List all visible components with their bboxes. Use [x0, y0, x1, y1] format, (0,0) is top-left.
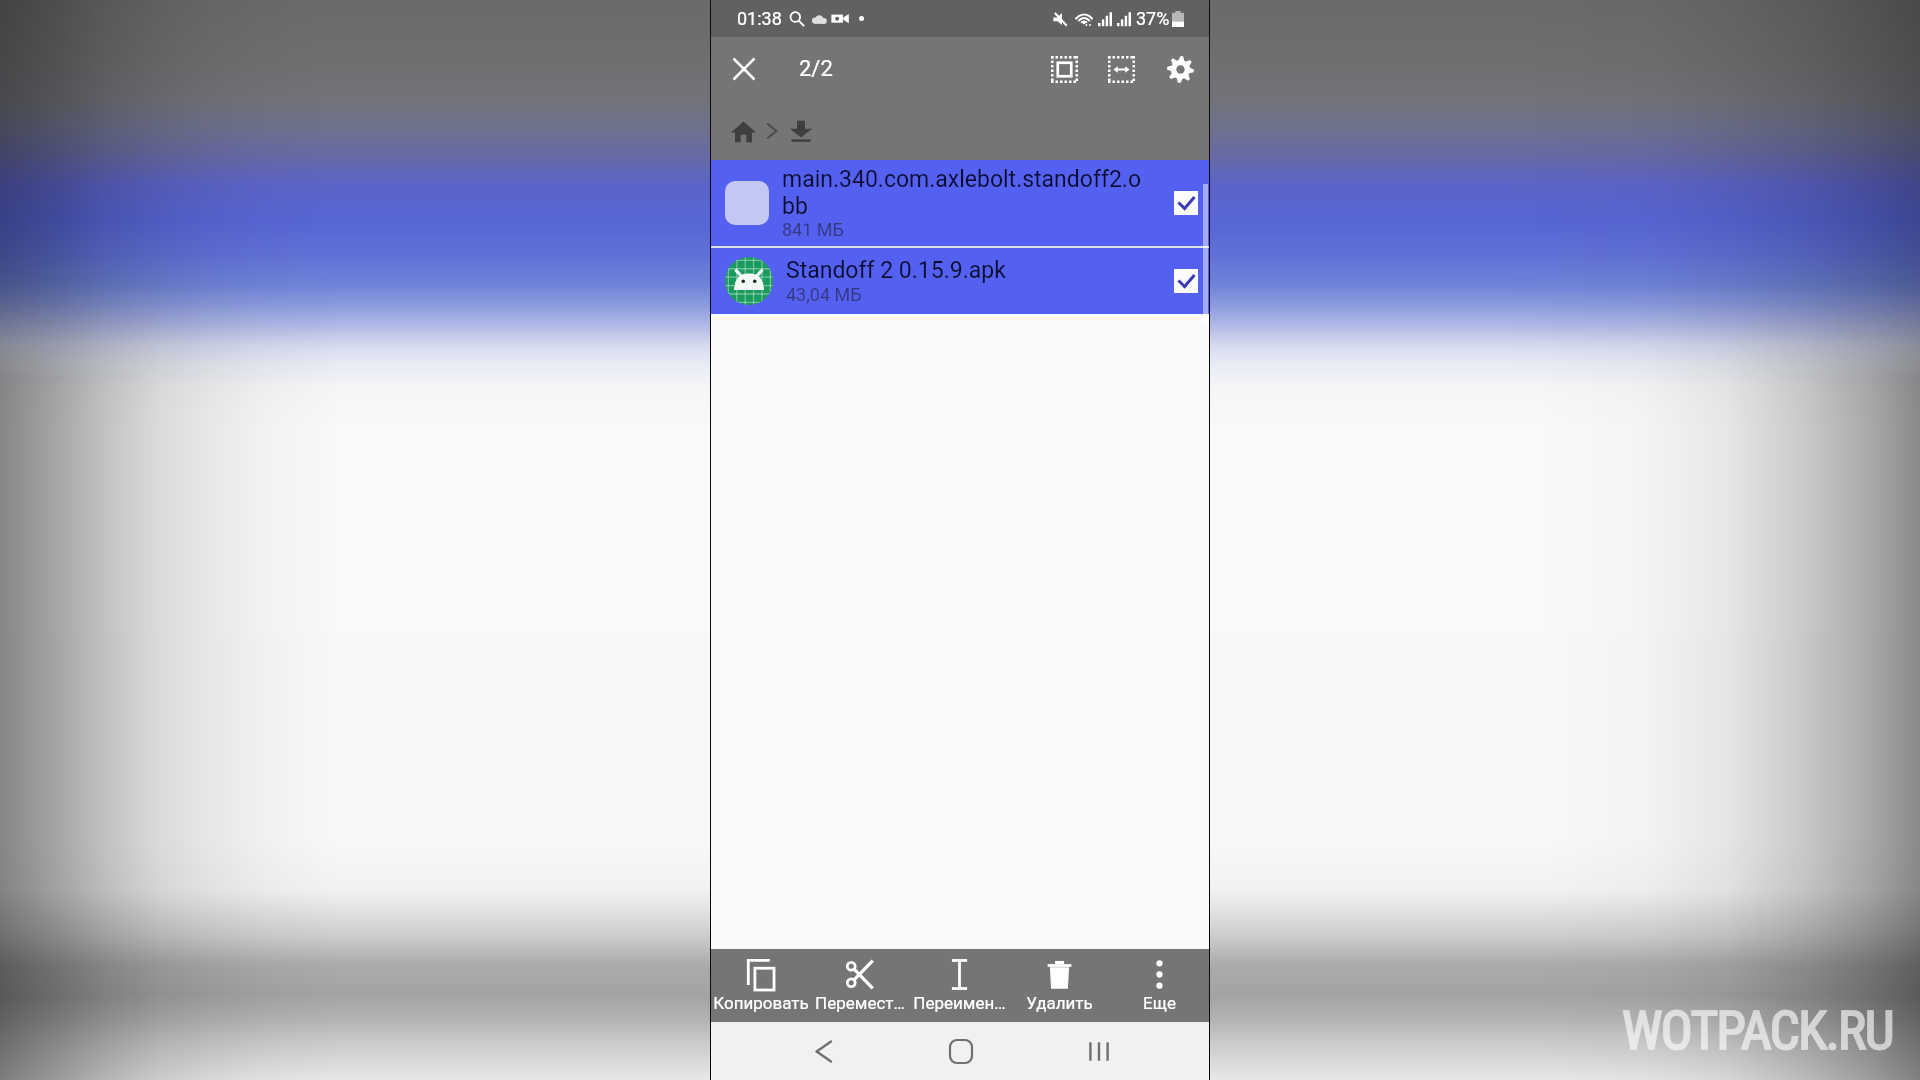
staticText: Еще — [1143, 993, 1176, 1013]
staticText: Переимен… — [913, 993, 1006, 1013]
button[interactable]: Selected — [1166, 261, 1206, 301]
staticText: 43,04 МБ — [786, 284, 862, 305]
staticText: Копировать — [713, 993, 809, 1013]
button[interactable]: Еще — [1109, 949, 1209, 1022]
button[interactable]: Select range — [1099, 47, 1143, 91]
button[interactable]: Close selection — [722, 47, 766, 91]
button[interactable]: Перемест… — [810, 949, 909, 1022]
button[interactable]: Download folder — [784, 114, 818, 148]
button[interactable]: Select all — [1042, 47, 1086, 91]
button[interactable]: Переимен… — [909, 949, 1009, 1022]
staticText: Перемест… — [815, 993, 905, 1013]
button[interactable]: Удалить — [1009, 949, 1109, 1022]
staticText: 841 МБ — [782, 219, 844, 240]
button[interactable]: Home folder — [726, 114, 760, 148]
staticText: 01:38 — [737, 8, 782, 29]
button[interactable]: Home — [933, 1022, 989, 1080]
staticText: 2/2 — [799, 56, 833, 82]
button[interactable]: Recents — [1071, 1022, 1127, 1080]
button[interactable]: Standoff 2 0.15.9.apk — [711, 248, 1209, 314]
staticText: WOTPACK.RU — [1622, 1000, 1894, 1062]
staticText: 37% — [1136, 8, 1170, 29]
button[interactable]: Копировать — [711, 949, 810, 1022]
button[interactable]: main.340.com.axlebolt.standoff2.o bb — [711, 160, 1209, 246]
staticText: Удалить — [1026, 993, 1093, 1013]
staticText: Standoff 2 0.15.9.apk — [786, 257, 1006, 284]
button[interactable]: Settings — [1158, 47, 1202, 91]
staticText: main.340.com.axlebolt.standoff2.o bb — [782, 166, 1141, 219]
button[interactable]: Back — [795, 1022, 851, 1080]
button[interactable]: Selected — [1166, 183, 1206, 223]
